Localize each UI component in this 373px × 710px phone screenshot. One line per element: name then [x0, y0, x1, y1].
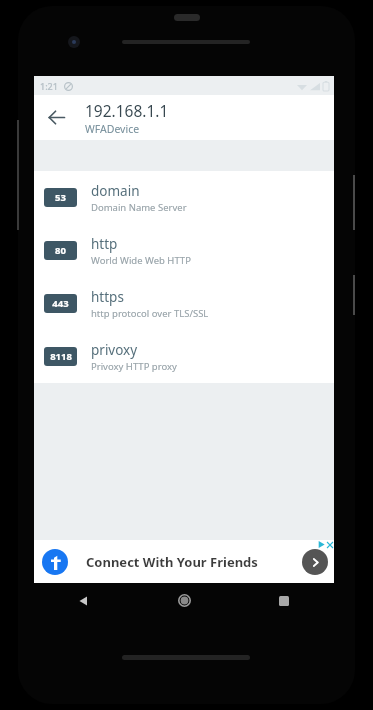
button[interactable]: Open ad [302, 549, 328, 575]
staticText: Connect With Your Friends [86, 553, 258, 571]
staticText: http protocol over TLS/SSL [91, 307, 209, 320]
button[interactable]: Recents [234, 583, 334, 618]
button[interactable]: 53 [34, 171, 334, 224]
staticText: 80 [55, 244, 66, 257]
staticText: WFADevice [85, 122, 140, 136]
staticText: Privoxy HTTP proxy [91, 360, 177, 373]
staticText: 53 [55, 191, 66, 204]
staticText: 1:21 [40, 80, 58, 92]
button[interactable]: 443 [34, 277, 334, 330]
staticText: http [91, 235, 118, 253]
button[interactable]: 80 [34, 224, 334, 277]
staticText: Domain Name Server [91, 201, 187, 214]
button[interactable]: Back [34, 95, 79, 140]
button[interactable]: Back [34, 583, 134, 618]
button[interactable]: Home [134, 583, 234, 618]
staticText: 192.168.1.1 [85, 100, 169, 121]
staticText: domain [91, 182, 140, 200]
button[interactable]: 8118 [34, 330, 334, 383]
staticText: 443 [52, 297, 69, 310]
staticText: World Wide Web HTTP [91, 254, 191, 267]
button[interactable]: Connect With Your Friends [34, 540, 334, 583]
staticText: https [91, 288, 124, 306]
staticText: privoxy [91, 341, 138, 359]
staticText: 8118 [50, 350, 72, 363]
